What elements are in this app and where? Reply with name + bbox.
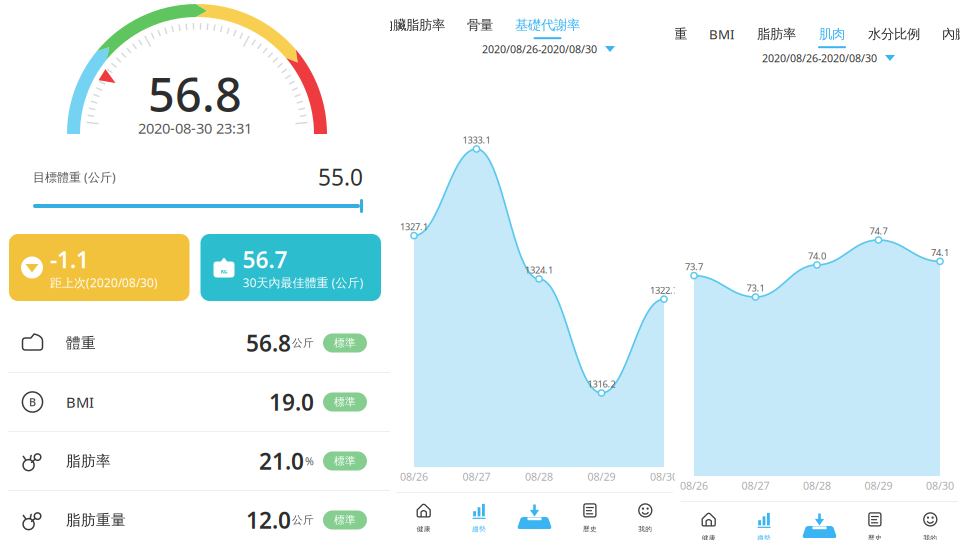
staticText: 08/30 — [926, 478, 954, 493]
staticText: 55.0 — [318, 162, 363, 192]
staticText: 19.0 — [269, 387, 314, 417]
staticText: 歷史 — [868, 534, 882, 540]
button[interactable]: 體重 — [0, 314, 390, 372]
button[interactable]: 歷史 — [562, 493, 618, 539]
staticText: 我的 — [638, 525, 652, 533]
button[interactable]: 2020/08/26-2020/08/30 — [482, 42, 615, 56]
button[interactable]: 內臟脂肪率 — [942, 26, 960, 48]
button[interactable]: 肌肉 — [818, 26, 846, 48]
staticText: 體重 — [66, 334, 96, 352]
staticText: 08/27 — [741, 478, 769, 493]
staticText: 脂肪重量 — [66, 511, 126, 529]
staticText: 標準 — [334, 513, 356, 526]
button[interactable]: B — [0, 373, 390, 431]
staticText: 1327.1 — [400, 220, 428, 233]
button[interactable]: 骨量 — [467, 17, 493, 39]
staticText: 肌肉 — [819, 26, 845, 42]
staticText: 水分比例 — [868, 26, 920, 42]
staticText: 12.0 — [246, 505, 291, 535]
button[interactable]: Measure — [507, 493, 562, 539]
staticText: 目標體重 (公斤) — [33, 169, 116, 185]
staticText: 脂肪率 — [757, 26, 796, 42]
button[interactable]: BMI — [709, 25, 735, 49]
staticText: 73.1 — [746, 282, 764, 294]
button[interactable]: 歷史 — [847, 502, 903, 540]
staticText: 30天內最佳體重 (公斤) — [242, 275, 363, 290]
staticText: 08/28 — [525, 469, 553, 484]
staticText: 74.1 — [931, 246, 949, 259]
staticText: 骨量 — [467, 17, 493, 33]
staticText: 08/28 — [803, 478, 831, 493]
staticText: 08/26 — [680, 478, 708, 493]
staticText: 74.0 — [808, 250, 826, 262]
staticText: 73.7 — [685, 260, 703, 273]
staticText: 標準 — [334, 454, 356, 467]
staticText: 1322.7 — [650, 284, 678, 296]
staticText: 08/29 — [587, 469, 615, 484]
staticText: 2020/08/26-2020/08/30 — [482, 42, 597, 56]
staticText: 08/27 — [462, 469, 490, 484]
staticText: 脂肪率 — [66, 452, 111, 470]
button[interactable]: 趨勢 — [451, 493, 507, 539]
button[interactable]: 我的 — [903, 502, 958, 540]
staticText: 56.7 — [242, 244, 287, 275]
staticText: 74.7 — [869, 225, 887, 237]
staticText: 內臟脂肪率 — [942, 26, 960, 42]
staticText: 歷史 — [583, 525, 597, 533]
button[interactable]: 2020/08/26-2020/08/30 — [762, 51, 895, 65]
button[interactable]: 脂肪重量 — [0, 491, 390, 540]
button[interactable]: 體重 — [661, 26, 687, 48]
button[interactable]: 脂肪率 — [757, 26, 796, 48]
staticText: 08/29 — [864, 478, 892, 493]
staticText: 公斤 — [292, 336, 314, 349]
staticText: 56.8 — [246, 328, 291, 358]
button[interactable]: 基礎代謝率 — [515, 17, 580, 39]
staticText: B — [29, 395, 36, 409]
staticText: 趨勢 — [757, 534, 771, 540]
button[interactable]: 我的 — [618, 493, 673, 539]
staticText: 21.0 — [259, 446, 304, 476]
button[interactable]: KG — [200, 234, 381, 301]
staticText: 1316.2 — [587, 378, 615, 390]
staticText: 2020-08-30 23:31 — [138, 118, 252, 138]
staticText: 我的 — [923, 534, 937, 540]
staticText: KG — [220, 268, 227, 275]
button[interactable]: 趨勢 — [736, 502, 792, 540]
staticText: % — [305, 454, 314, 468]
staticText: BMI — [66, 392, 94, 412]
button[interactable]: 內臟脂肪率 — [380, 17, 445, 39]
staticText: 趨勢 — [472, 525, 486, 533]
staticText: 2020/08/26-2020/08/30 — [762, 51, 877, 65]
staticText: 健康 — [702, 534, 716, 540]
staticText: BMI — [709, 25, 735, 43]
staticText: -1.1 — [50, 244, 89, 275]
button[interactable]: 水分比例 — [868, 26, 920, 48]
staticText: 基礎代謝率 — [515, 17, 580, 33]
staticText: 56.8 — [148, 63, 242, 125]
button[interactable]: Measure — [792, 502, 847, 540]
button[interactable]: -1.1 — [9, 234, 189, 301]
staticText: 標準 — [334, 336, 356, 349]
staticText: 距上次(2020/08/30) — [50, 275, 158, 290]
staticText: 健康 — [417, 525, 431, 533]
staticText: 內臟脂肪率 — [380, 17, 445, 33]
staticText: 08/30 — [650, 469, 678, 484]
staticText: 1333.1 — [462, 134, 490, 146]
button[interactable]: 脂肪率 — [0, 432, 390, 490]
staticText: 標準 — [334, 395, 356, 408]
staticText: 體重 — [661, 26, 687, 42]
staticText: 公斤 — [292, 513, 314, 526]
button[interactable]: 健康 — [396, 493, 451, 539]
staticText: 1324.1 — [525, 264, 553, 276]
staticText: 08/26 — [400, 469, 428, 484]
button[interactable]: 健康 — [681, 502, 736, 540]
